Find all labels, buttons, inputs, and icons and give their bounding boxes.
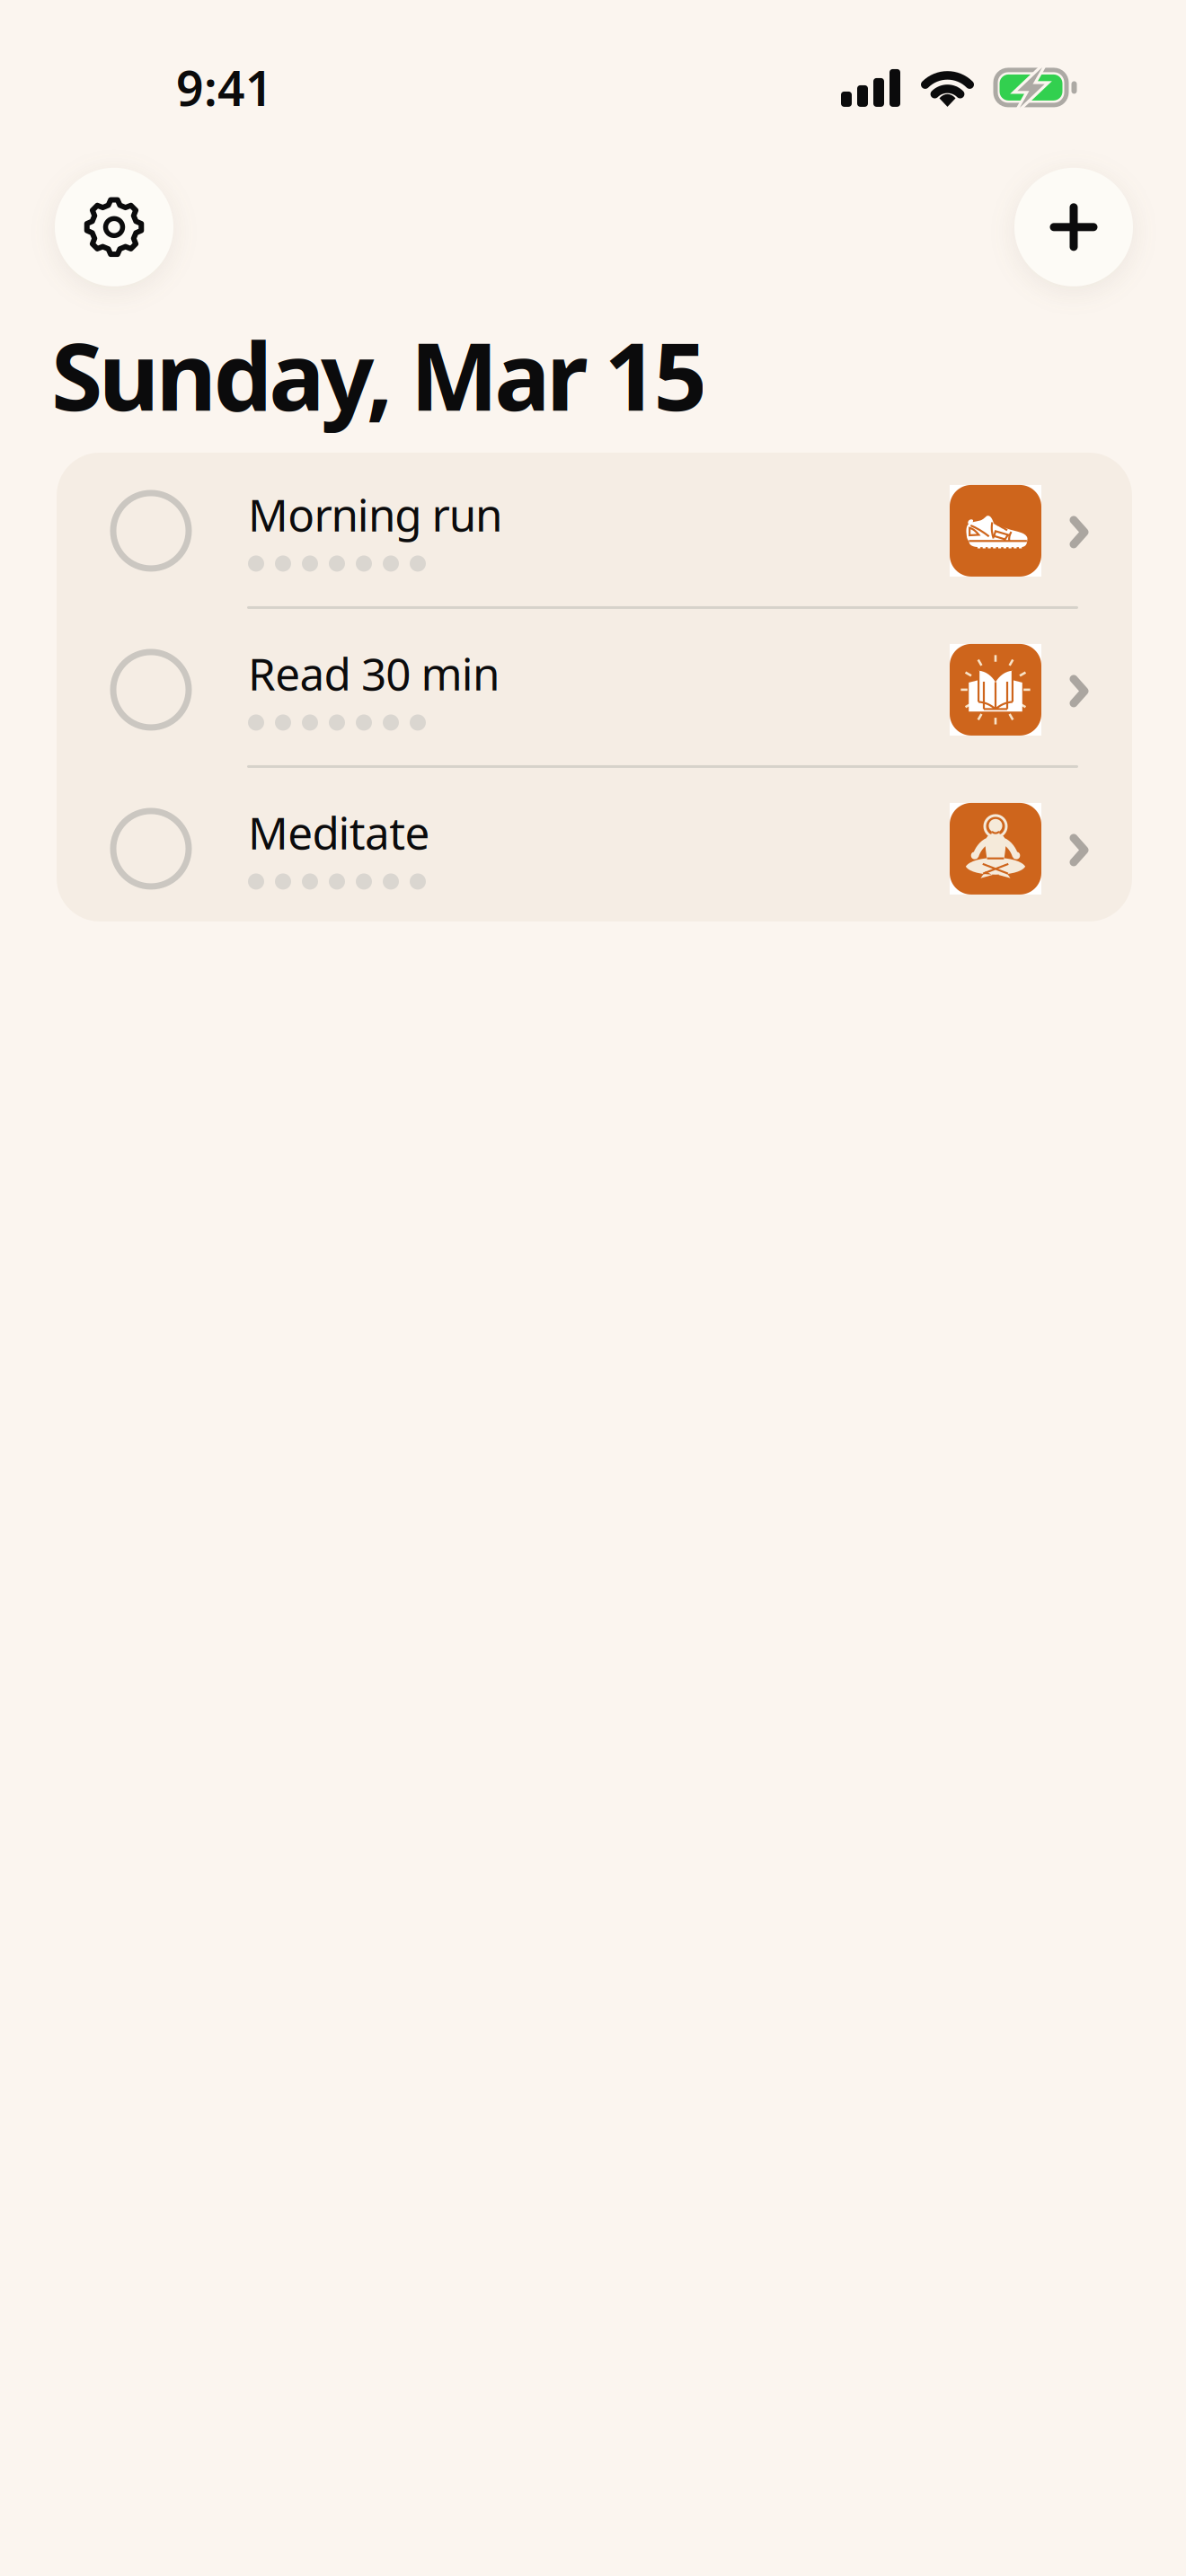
staticText: Read 30 min <box>248 644 500 703</box>
button[interactable]: Meditate <box>57 768 1132 924</box>
button[interactable]: Morning run <box>57 450 1132 606</box>
staticText: Morning run <box>248 485 502 544</box>
button[interactable]: Settings <box>55 168 173 286</box>
button[interactable]: Add habit <box>1014 168 1133 286</box>
button[interactable]: Read 30 min <box>57 609 1132 765</box>
staticText: Meditate <box>248 803 430 862</box>
staticText: 9:41 <box>176 56 273 119</box>
staticText: Sunday, Mar 15 <box>51 312 707 436</box>
